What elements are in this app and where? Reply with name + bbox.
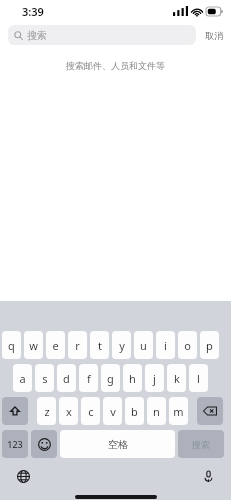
staticText: 123 [7,438,23,450]
staticText: k [174,371,180,386]
staticText: u [140,338,147,353]
staticText: 空格 [108,438,128,451]
staticText: i [164,338,167,353]
button[interactable]: r [68,331,87,359]
button[interactable]: Emoji [31,430,57,458]
staticText: w [29,338,38,353]
button[interactable]: Backspace [197,397,223,425]
button[interactable]: h [123,364,142,392]
staticText: a [19,371,26,386]
button[interactable]: Shift [2,397,28,425]
button[interactable]: k [167,364,186,392]
staticText: 取消 [205,30,223,41]
button[interactable]: n [147,397,166,425]
button[interactable]: 搜索 [178,430,224,458]
button[interactable]: s [35,364,54,392]
staticText: o [184,338,191,353]
button[interactable]: p [200,331,219,359]
button[interactable]: d [57,364,76,392]
staticText: h [129,371,136,386]
button[interactable]: f [79,364,98,392]
button[interactable]: t [90,331,109,359]
staticText: d [63,371,70,386]
button[interactable]: Voice input [197,465,219,487]
button[interactable]: o [178,331,197,359]
button[interactable]: g [101,364,120,392]
button[interactable]: v [103,397,122,425]
button[interactable]: b [125,397,144,425]
staticText: f [87,371,91,386]
staticText: n [153,404,160,419]
button[interactable]: 123 [2,430,28,458]
button[interactable]: 空格 [60,430,175,458]
staticText: s [42,371,48,386]
staticText: r [75,338,80,353]
button[interactable]: c [81,397,100,425]
staticText: 搜索 [192,439,210,450]
staticText: l [197,371,200,386]
staticText: 搜索邮件、人员和文件等 [66,60,165,71]
button[interactable]: i [156,331,175,359]
button[interactable]: m [169,397,188,425]
staticText: t [98,338,102,353]
staticText: p [206,338,213,353]
button[interactable]: e [46,331,65,359]
staticText: e [52,338,59,353]
button[interactable]: y [112,331,131,359]
button[interactable]: q [2,331,21,359]
button[interactable]: z [37,397,56,425]
button[interactable]: u [134,331,153,359]
staticText: z [44,404,50,419]
button[interactable]: 取消 [203,27,225,44]
staticText: 搜索 [27,29,47,42]
staticText: 3:39 [22,4,44,19]
button[interactable]: 搜索 [8,25,196,45]
staticText: g [107,371,114,386]
staticText: x [66,404,72,419]
button[interactable]: a [13,364,32,392]
button[interactable]: l [189,364,208,392]
staticText: b [131,404,138,419]
staticText: m [173,404,184,419]
button[interactable]: Change keyboard [12,465,34,487]
staticText: c [88,404,94,419]
staticText: y [119,338,125,353]
button[interactable]: j [145,364,164,392]
button[interactable]: w [24,331,43,359]
staticText: j [153,371,156,386]
button[interactable]: x [59,397,78,425]
staticText: v [110,404,116,419]
staticText: q [8,338,15,353]
